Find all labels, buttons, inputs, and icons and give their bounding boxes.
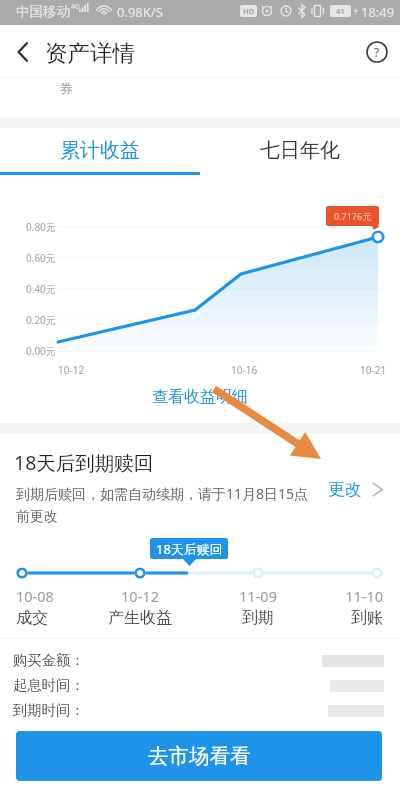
button[interactable]: 去市场看看 xyxy=(16,731,382,781)
staticText: 购买金额： xyxy=(13,651,85,669)
staticText: 10-08 xyxy=(16,586,96,606)
staticText: 0.7176元 xyxy=(334,210,372,222)
staticText: 产生收益 xyxy=(100,608,180,628)
staticText: 11-10 xyxy=(303,586,383,606)
staticText: 到期后赎回，如需自动续期，请于11月8日15点前更改 xyxy=(16,484,313,526)
staticText: 0.40元 xyxy=(26,282,56,296)
staticText: 查看收益明细 xyxy=(152,387,248,407)
staticText: ? xyxy=(374,44,380,60)
button[interactable]: Back xyxy=(0,25,46,78)
button[interactable]: 七日年化 xyxy=(200,128,400,176)
staticText: 累计收益 xyxy=(60,138,140,163)
staticText: 到账 xyxy=(303,608,383,628)
staticText: 18天后到期赎回 xyxy=(14,449,154,476)
staticText: 18:49 xyxy=(361,3,395,21)
staticText: 41 xyxy=(336,6,345,16)
staticText: 中国移动 xyxy=(16,3,70,20)
staticText: 到期 xyxy=(218,608,298,628)
staticText: 0.60元 xyxy=(26,251,56,265)
staticText: 券 xyxy=(60,80,73,96)
staticText: 资产详情 xyxy=(45,39,135,67)
staticText: 七日年化 xyxy=(260,138,340,163)
staticText: 0.20元 xyxy=(26,313,56,327)
staticText: 4G xyxy=(71,2,81,12)
staticText: HD xyxy=(243,6,255,16)
staticText: 到期时间： xyxy=(13,701,85,719)
staticText: 10-16 xyxy=(231,363,258,377)
staticText: 成交 xyxy=(16,608,96,628)
staticText: 10-12 xyxy=(58,363,85,377)
button[interactable]: Help xyxy=(354,25,400,78)
staticText: 更改 xyxy=(328,479,361,500)
staticText: 10-21 xyxy=(360,363,387,377)
staticText: 18天后赎回 xyxy=(156,540,223,558)
staticText: 0.00元 xyxy=(26,344,56,358)
staticText: 起息时间： xyxy=(13,676,85,694)
button[interactable]: 更改 xyxy=(328,476,383,502)
staticText: 去市场看看 xyxy=(148,743,251,769)
staticText: 11-09 xyxy=(218,586,298,606)
button[interactable]: 累计收益 xyxy=(0,128,200,176)
staticText: 10-12 xyxy=(100,586,180,606)
button[interactable]: 查看收益明细 xyxy=(152,387,248,407)
staticText: 0.80元 xyxy=(26,220,56,234)
staticText: 0.98K/S xyxy=(117,3,163,21)
